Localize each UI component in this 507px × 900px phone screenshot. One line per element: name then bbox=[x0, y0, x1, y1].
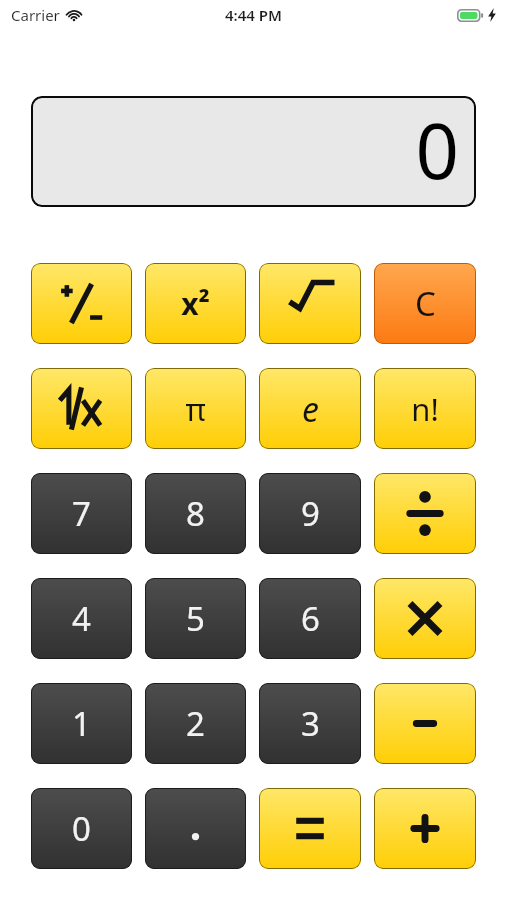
button[interactable]: 3 bbox=[259, 683, 361, 764]
button[interactable]: 6 bbox=[259, 578, 361, 659]
staticText: 3 bbox=[301, 701, 320, 746]
button[interactable]: n! bbox=[374, 368, 476, 449]
button[interactable]: 9 bbox=[259, 473, 361, 554]
button[interactable]: 2 bbox=[145, 683, 246, 764]
button[interactable]: 7 bbox=[31, 473, 132, 554]
button[interactable]: Multiply bbox=[374, 578, 476, 659]
button[interactable]: Divide bbox=[374, 473, 476, 554]
button[interactable]: Decimal point bbox=[145, 788, 246, 869]
staticText: 6 bbox=[301, 596, 320, 641]
button[interactable]: 8 bbox=[145, 473, 246, 554]
button[interactable]: Subtract bbox=[374, 683, 476, 764]
staticText: 4 bbox=[72, 596, 91, 641]
button[interactable]: Equals bbox=[259, 788, 361, 869]
staticText: n! bbox=[411, 388, 439, 430]
staticText: C bbox=[415, 281, 436, 326]
button[interactable]: Plus minus sign bbox=[31, 263, 132, 344]
button[interactable]: Reciprocal bbox=[31, 368, 132, 449]
staticText: 4:44 PM bbox=[225, 5, 282, 25]
button[interactable]: Square root bbox=[259, 263, 361, 344]
staticText: 8 bbox=[186, 491, 205, 536]
staticText: 1 bbox=[72, 701, 91, 746]
staticText: x² bbox=[181, 283, 210, 324]
other: Battery bbox=[457, 9, 484, 22]
staticText: 7 bbox=[72, 491, 91, 536]
button[interactable]: 4 bbox=[31, 578, 132, 659]
staticText: e bbox=[302, 386, 319, 432]
button[interactable]: e bbox=[259, 368, 361, 449]
staticText: 0 bbox=[72, 806, 91, 851]
staticText: 5 bbox=[186, 596, 205, 641]
staticText: Carrier bbox=[11, 5, 60, 25]
button[interactable]: x² bbox=[145, 263, 246, 344]
button[interactable]: 1 bbox=[31, 683, 132, 764]
other: Wi-Fi bbox=[66, 9, 82, 21]
button[interactable]: 0 bbox=[31, 788, 132, 869]
staticText: 2 bbox=[186, 701, 205, 746]
staticText: π bbox=[185, 388, 206, 430]
staticText: 9 bbox=[301, 491, 320, 536]
staticText: 0 bbox=[415, 98, 459, 202]
button[interactable]: Add bbox=[374, 788, 476, 869]
button[interactable]: π bbox=[145, 368, 246, 449]
button[interactable]: 5 bbox=[145, 578, 246, 659]
button[interactable]: C bbox=[374, 263, 476, 344]
